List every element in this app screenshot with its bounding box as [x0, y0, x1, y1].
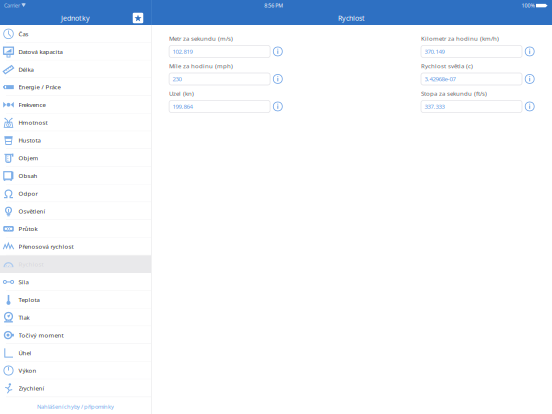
- staticText: Čas: [18, 30, 28, 38]
- staticText: 3.42968e-07: [424, 75, 455, 83]
- button[interactable]: 337.333: [421, 100, 522, 112]
- staticText: Objem: [18, 154, 38, 162]
- staticText: 230: [173, 75, 182, 83]
- staticText: Hmotnost: [18, 118, 47, 127]
- button[interactable]: Informace: [524, 46, 535, 57]
- button[interactable]: Obsah: [0, 167, 151, 184]
- button[interactable]: Osvětlení: [0, 202, 151, 220]
- staticText: Odpor: [18, 189, 37, 197]
- button[interactable]: Objem: [0, 149, 151, 167]
- staticText: Uzel (kn): [169, 89, 194, 98]
- button[interactable]: Teplota: [0, 291, 151, 308]
- button[interactable]: Hustota: [0, 131, 151, 149]
- staticText: Délka: [18, 65, 33, 73]
- staticText: Rychlost: [18, 260, 43, 268]
- button[interactable]: Přenosová rychlost: [0, 238, 151, 255]
- staticText: Kilometr za hodinu (km/h): [421, 34, 499, 43]
- button[interactable]: Výkon: [0, 362, 151, 379]
- button[interactable]: Informace: [273, 74, 283, 84]
- button[interactable]: Délka: [0, 60, 151, 78]
- staticText: Datová kapacita: [18, 47, 62, 56]
- staticText: Osvětlení: [18, 207, 45, 215]
- button[interactable]: Oblíbené: [132, 12, 144, 24]
- staticText: Síla: [18, 278, 28, 286]
- staticText: Točivý moment: [18, 331, 63, 339]
- staticText: Frekvence: [18, 101, 45, 109]
- button[interactable]: Informace: [524, 74, 535, 84]
- button[interactable]: Zrychlení: [0, 379, 151, 397]
- button[interactable]: Úhel: [0, 344, 151, 362]
- button[interactable]: Informace: [524, 101, 535, 112]
- button[interactable]: 3.42968e-07: [421, 73, 522, 85]
- staticText: Zrychlení: [18, 384, 44, 392]
- staticText: Carrier: [4, 2, 20, 9]
- staticText: 199.864: [173, 102, 193, 111]
- staticText: Míle za hodinu (mph): [169, 62, 233, 70]
- staticText: Rychlost světla (c): [421, 62, 473, 70]
- button[interactable]: 102.819: [169, 45, 270, 57]
- button[interactable]: Energie / Práce: [0, 78, 151, 96]
- staticText: 8:56 PM: [264, 2, 283, 9]
- button[interactable]: Hmotnost: [0, 114, 151, 131]
- button[interactable]: 230: [169, 73, 270, 85]
- staticText: Přenosová rychlost: [18, 242, 73, 251]
- button[interactable]: Frekvence: [0, 96, 151, 114]
- staticText: Tlak: [18, 313, 29, 321]
- staticText: Nahlášení chyby / připomínky: [37, 403, 114, 410]
- button[interactable]: Odpor: [0, 184, 151, 202]
- button[interactable]: 199.864: [169, 100, 270, 112]
- staticText: 337.333: [424, 102, 444, 111]
- button[interactable]: Točivý moment: [0, 326, 151, 344]
- staticText: Teplota: [18, 296, 39, 304]
- staticText: 100%: [521, 2, 534, 9]
- staticText: Metr za sekundu (m/s): [169, 34, 233, 43]
- button[interactable]: Informace: [273, 46, 283, 57]
- button[interactable]: Nahlášení chyby / připomínky: [0, 399, 151, 414]
- button[interactable]: Čas: [0, 25, 151, 43]
- button[interactable]: Rychlost: [0, 255, 151, 273]
- staticText: Hustota: [18, 136, 40, 144]
- staticText: Jednotky: [61, 13, 90, 23]
- staticText: 370.149: [424, 47, 444, 56]
- button[interactable]: Informace: [273, 101, 283, 112]
- staticText: 102.819: [173, 47, 193, 56]
- staticText: Obsah: [18, 171, 37, 180]
- button[interactable]: 370.149: [421, 45, 522, 57]
- button[interactable]: Průtok: [0, 220, 151, 238]
- staticText: Úhel: [18, 349, 31, 357]
- button[interactable]: Síla: [0, 273, 151, 291]
- staticText: Průtok: [18, 225, 37, 233]
- staticText: Stopa za sekundu (ft/s): [421, 89, 487, 98]
- staticText: Rychlost: [338, 13, 365, 23]
- staticText: Výkon: [18, 366, 36, 375]
- button[interactable]: Tlak: [0, 308, 151, 326]
- staticText: Energie / Práce: [18, 83, 60, 91]
- button[interactable]: Datová kapacita: [0, 43, 151, 60]
